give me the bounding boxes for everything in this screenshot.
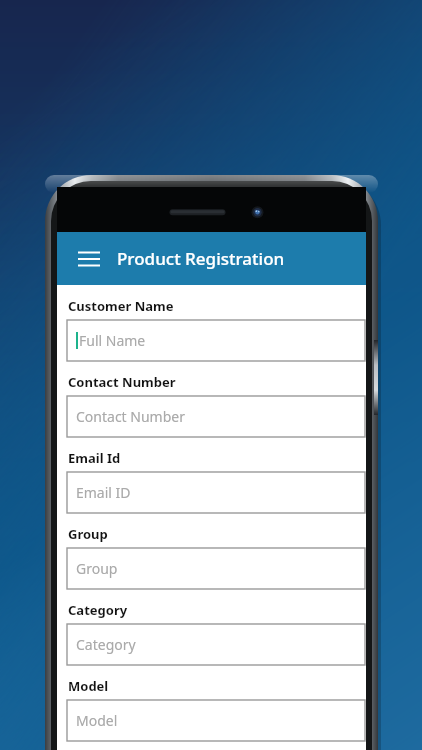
staticText: Model [76,711,118,730]
staticText: Contact Number [68,373,176,391]
staticText: Model [68,677,109,695]
staticText: Email ID [76,483,131,502]
staticText: Group [76,559,118,578]
staticText: Category [76,635,136,654]
staticText: Customer Name [68,297,174,315]
button[interactable]: Group [67,548,365,589]
button[interactable]: Category [67,624,365,665]
staticText: Full Name [79,331,146,350]
staticText: Product Registration [117,247,285,270]
staticText: Email Id [68,449,121,467]
button[interactable]: Model [67,700,365,741]
button[interactable]: Email ID [67,472,365,513]
staticText: Group [68,525,108,543]
button[interactable]: Open navigation menu [67,237,111,281]
staticText: Contact Number [76,407,185,426]
staticText: Category [68,601,128,619]
button[interactable]: Contact Number [67,396,365,437]
button[interactable]: Full Name [67,320,365,361]
